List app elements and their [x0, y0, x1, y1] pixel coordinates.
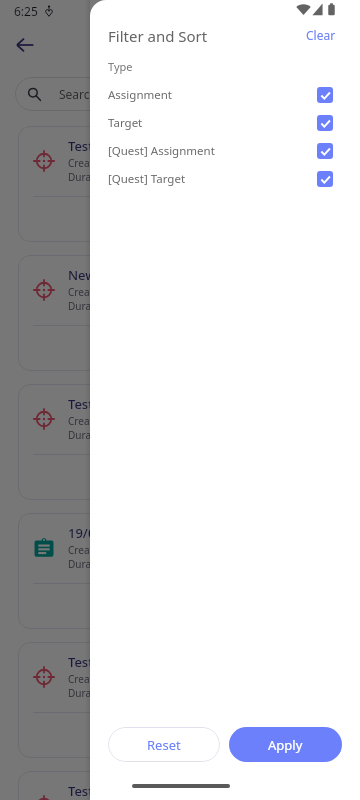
staticText: Test target [68, 137, 135, 155]
staticText: Created: 19/06/2024 [68, 156, 164, 170]
staticText: Duration: 30 min [68, 428, 147, 442]
button[interactable]: Back [12, 32, 38, 58]
staticText: Test target [68, 782, 135, 800]
button[interactable]: Clear [298, 24, 344, 46]
button[interactable]: New target [18, 255, 342, 371]
staticText: Created: 19/06/2024 [68, 672, 164, 686]
staticText: Target [108, 115, 143, 131]
button[interactable]: [Quest] Assignment [90, 137, 360, 165]
button[interactable]: Assignment [90, 81, 360, 109]
staticText: Created: 19/06/2024 [68, 414, 164, 428]
button[interactable]: 19/06/2024 [18, 513, 342, 629]
button[interactable]: Reset [108, 727, 220, 762]
staticText: Duration: 30 min [68, 686, 147, 700]
button[interactable]: Apply [229, 727, 342, 762]
button[interactable]: Test target [18, 126, 342, 242]
staticText: [Quest] Target [108, 171, 186, 187]
staticText: Created: 19/06/2024 [68, 543, 164, 557]
staticText: Test target [68, 653, 135, 671]
staticText: [Quest] Assignment [108, 143, 215, 159]
staticText: Reset [147, 736, 181, 754]
button[interactable]: Test target [18, 642, 342, 758]
staticText: Clear [306, 27, 336, 43]
staticText: Apply [268, 736, 303, 754]
staticText: Search [59, 86, 97, 102]
button[interactable]: Test target [18, 384, 342, 500]
staticText: Duration: 30 min [68, 170, 147, 184]
staticText: Duration: 30 min [68, 299, 147, 313]
staticText: 19/06/2024 [68, 524, 138, 542]
button[interactable]: Search [15, 77, 345, 111]
staticText: Type [108, 59, 133, 74]
staticText: Assignment [108, 87, 173, 103]
staticText: Filter and Sort [108, 26, 208, 46]
staticText: Created: 19/06/2024 [68, 285, 164, 299]
staticText: Test target [68, 395, 135, 413]
staticText: Duration: 30 min [68, 557, 147, 571]
staticText: 6:25 [14, 3, 38, 19]
button[interactable]: [Quest] Target [90, 165, 360, 193]
staticText: New target [68, 266, 138, 284]
button[interactable]: Test target [18, 771, 342, 800]
button[interactable]: Target [90, 109, 360, 137]
